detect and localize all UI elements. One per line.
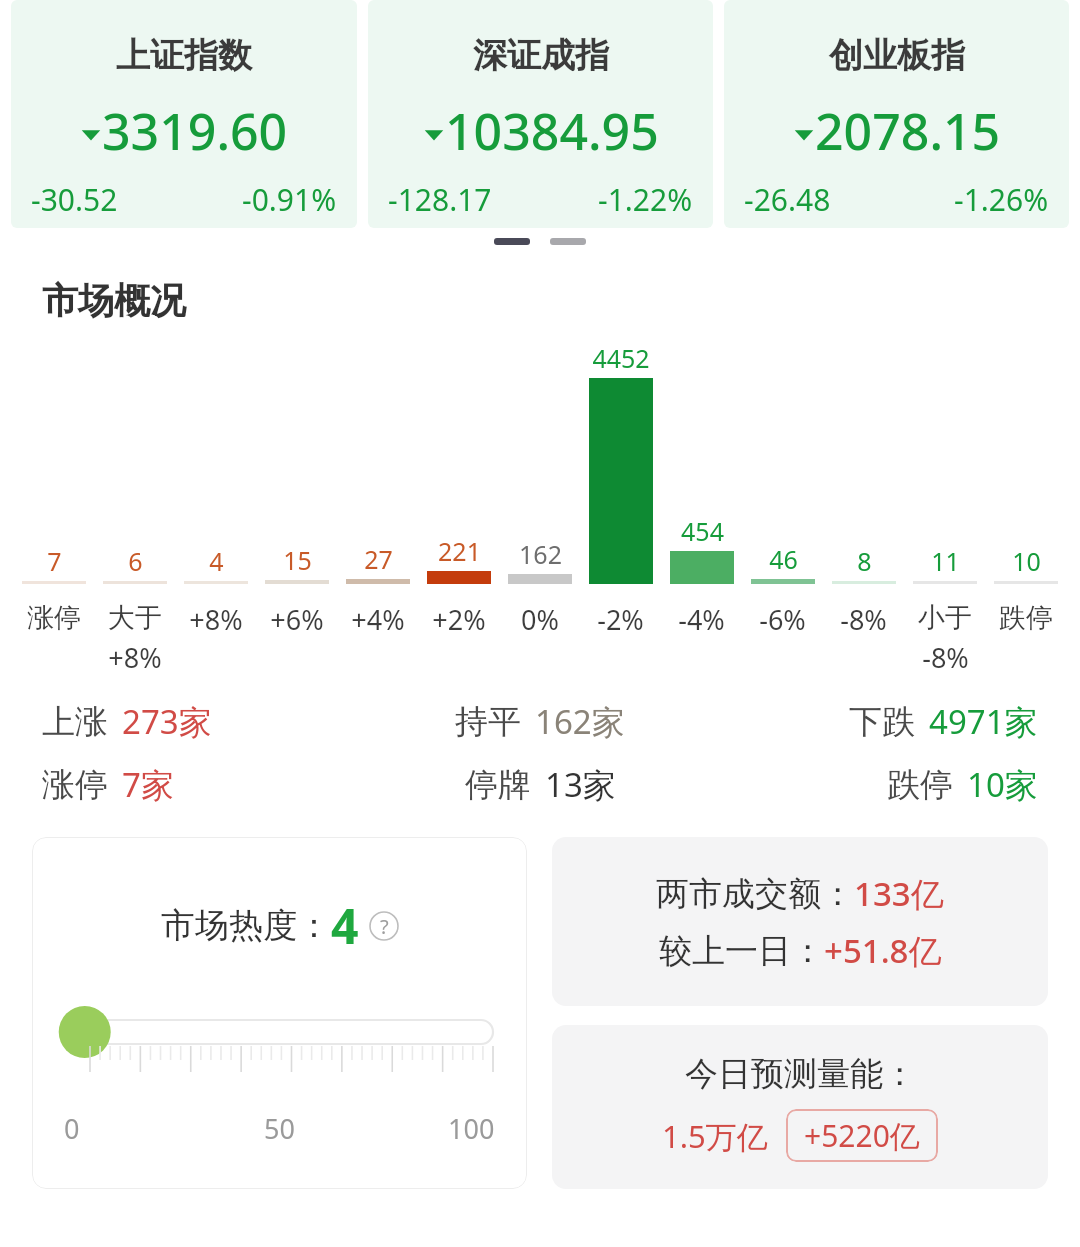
staticText: 市场概况 bbox=[42, 278, 186, 323]
staticText: -128.17 bbox=[388, 179, 492, 220]
staticText: 50 bbox=[264, 1110, 295, 1147]
button[interactable]: 上证指数 bbox=[11, 0, 357, 228]
staticText: -8% bbox=[840, 601, 887, 638]
staticText: 162家 bbox=[535, 699, 625, 744]
staticText: 10家 bbox=[967, 762, 1038, 807]
staticText: 4 bbox=[331, 893, 359, 958]
staticText: 创业板指 bbox=[829, 34, 965, 77]
button[interactable]: 今日预测量能： bbox=[552, 1025, 1048, 1189]
staticText: 跌停 bbox=[999, 601, 1053, 635]
staticText: 停牌 bbox=[465, 764, 531, 806]
staticText: 454 bbox=[681, 514, 724, 548]
button[interactable]: 帮助 bbox=[369, 911, 399, 941]
staticText: 6 bbox=[128, 544, 143, 578]
staticText: 深证成指 bbox=[473, 34, 609, 77]
staticText: 上证指数 bbox=[116, 34, 252, 77]
staticText: 持平 bbox=[455, 701, 521, 743]
staticText: 今日预测量能： bbox=[685, 1053, 916, 1095]
staticText: 133亿 bbox=[854, 871, 944, 916]
staticText: -26.48 bbox=[744, 179, 831, 220]
staticText: 两市成交额： bbox=[656, 873, 854, 915]
staticText: 8 bbox=[857, 544, 872, 578]
staticText: 10384.95 bbox=[445, 97, 659, 165]
staticText: 11 bbox=[931, 544, 960, 578]
staticText: 涨停 bbox=[27, 601, 81, 635]
staticText: +2% bbox=[432, 601, 486, 638]
staticText: -6% bbox=[759, 601, 806, 638]
staticText: 下跌 bbox=[849, 701, 915, 743]
staticText: 100 bbox=[448, 1110, 495, 1147]
staticText: 0 bbox=[64, 1110, 80, 1147]
staticText: 涨停 bbox=[42, 764, 108, 806]
staticText: 10 bbox=[1012, 544, 1041, 578]
staticText: 大于 bbox=[108, 601, 162, 635]
button[interactable]: 深证成指 bbox=[368, 0, 713, 228]
staticText: 15 bbox=[283, 543, 312, 577]
staticText: -4% bbox=[678, 601, 725, 638]
staticText: -8% bbox=[922, 639, 969, 676]
button[interactable]: 创业板指 bbox=[724, 0, 1069, 228]
staticText: 4971家 bbox=[929, 699, 1038, 744]
staticText: 4452 bbox=[592, 341, 650, 375]
staticText: 0% bbox=[521, 601, 559, 638]
staticText: 跌停 bbox=[887, 764, 953, 806]
staticText: +51.8亿 bbox=[824, 928, 942, 973]
staticText: +8% bbox=[108, 639, 162, 676]
staticText: 较上一日： bbox=[659, 930, 824, 972]
staticText: -30.52 bbox=[31, 179, 118, 220]
staticText: ? bbox=[380, 913, 389, 940]
staticText: 273家 bbox=[122, 699, 212, 744]
staticText: -2% bbox=[597, 601, 644, 638]
staticText: 市场热度： bbox=[161, 904, 331, 947]
button[interactable]: 市场热度： bbox=[32, 837, 527, 1189]
staticText: 3319.60 bbox=[102, 97, 288, 165]
staticText: +6% bbox=[270, 601, 324, 638]
button[interactable]: 两市成交额： bbox=[552, 837, 1048, 1006]
staticText: -1.26% bbox=[954, 179, 1049, 220]
staticText: +4% bbox=[351, 601, 405, 638]
staticText: 13家 bbox=[545, 762, 616, 807]
staticText: 4 bbox=[209, 544, 224, 578]
staticText: 46 bbox=[769, 542, 798, 576]
staticText: 2078.15 bbox=[815, 97, 1001, 165]
staticText: +5220亿 bbox=[804, 1115, 920, 1156]
staticText: 27 bbox=[364, 542, 393, 576]
staticText: 7家 bbox=[122, 762, 174, 807]
staticText: -1.22% bbox=[598, 179, 693, 220]
staticText: 小于 bbox=[918, 601, 972, 635]
staticText: 221 bbox=[438, 534, 481, 568]
staticText: 上涨 bbox=[42, 701, 108, 743]
staticText: -0.91% bbox=[242, 179, 337, 220]
staticText: 1.5万亿 bbox=[662, 1115, 768, 1157]
staticText: 7 bbox=[47, 544, 62, 578]
staticText: 162 bbox=[519, 537, 562, 571]
staticText: +8% bbox=[189, 601, 243, 638]
